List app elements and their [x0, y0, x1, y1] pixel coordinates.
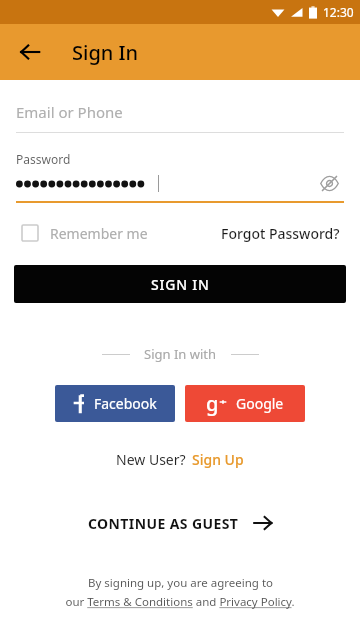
button[interactable]: Sign Up [192, 450, 244, 469]
staticText: New User? [116, 450, 186, 469]
staticText: Sign In [72, 39, 139, 66]
button[interactable]: Forgot Password? [217, 220, 344, 247]
staticText: Sign Up [192, 450, 244, 469]
button[interactable]: Facebook [55, 385, 175, 422]
staticText: Remember me [50, 224, 148, 243]
staticText: Email or Phone [16, 102, 123, 122]
staticText: SIGN IN [151, 275, 210, 294]
button[interactable]: g [185, 385, 305, 422]
button[interactable]: CONTINUE AS GUEST [80, 509, 281, 537]
staticText: Password [16, 151, 71, 167]
button[interactable]: our Terms & Conditions and Privacy Polic… [65, 594, 295, 610]
staticText: By signing up, you are agreeing to [88, 575, 273, 591]
button[interactable]: Remember me [16, 219, 148, 247]
button[interactable]: SIGN IN [14, 265, 346, 303]
button[interactable]: Toggle password visibility [314, 173, 344, 193]
staticText: our Terms & Conditions and Privacy Polic… [65, 594, 295, 610]
staticText: Forgot Password? [221, 224, 340, 243]
staticText: Facebook [94, 394, 157, 413]
staticText: Sign In with [144, 345, 217, 363]
staticText: g [206, 390, 219, 417]
staticText: 12:30 [323, 4, 354, 20]
button[interactable]: Back [10, 32, 50, 72]
staticText: CONTINUE AS GUEST [88, 514, 239, 533]
staticText: Google [236, 394, 284, 413]
